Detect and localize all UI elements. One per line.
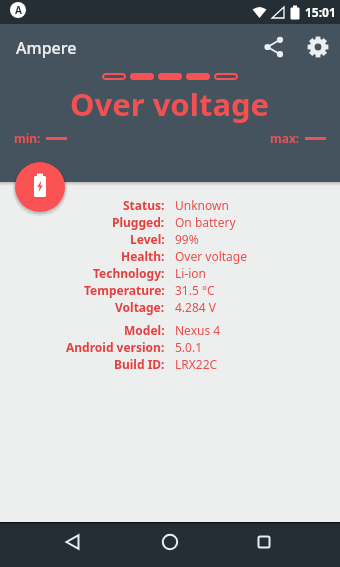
staticText: 99%: [175, 231, 199, 247]
button[interactable]: [48, 522, 96, 567]
staticText: A: [15, 3, 22, 17]
staticText: Level:: [130, 231, 165, 247]
staticText: Plugged:: [112, 214, 165, 230]
staticText: Over voltage: [175, 248, 247, 264]
button[interactable]: [258, 31, 290, 63]
staticText: Over voltage: [70, 83, 270, 125]
staticText: Technology:: [93, 265, 165, 281]
button[interactable]: [302, 31, 334, 63]
staticText: Status:: [123, 197, 165, 213]
staticText: Model:: [124, 322, 165, 338]
staticText: Ampere: [16, 37, 77, 59]
staticText: min:: [14, 130, 41, 146]
button[interactable]: [240, 522, 288, 567]
staticText: Li-ion: [175, 265, 207, 281]
staticText: Android version:: [66, 339, 165, 355]
staticText: Nexus 4: [175, 322, 221, 338]
staticText: Temperature:: [84, 282, 165, 298]
staticText: max:: [270, 130, 300, 146]
staticText: LRX22C: [175, 356, 218, 372]
staticText: Build ID:: [114, 356, 165, 372]
staticText: Health:: [121, 248, 165, 264]
staticText: On battery: [175, 214, 236, 230]
button[interactable]: [15, 162, 65, 212]
staticText: 4.284 V: [175, 299, 216, 315]
staticText: Voltage:: [115, 299, 165, 315]
button[interactable]: [146, 522, 194, 567]
staticText: 15:01: [305, 4, 336, 20]
staticText: Unknown: [175, 197, 229, 213]
staticText: 31.5 °C: [175, 282, 215, 298]
staticText: 5.0.1: [175, 339, 203, 355]
